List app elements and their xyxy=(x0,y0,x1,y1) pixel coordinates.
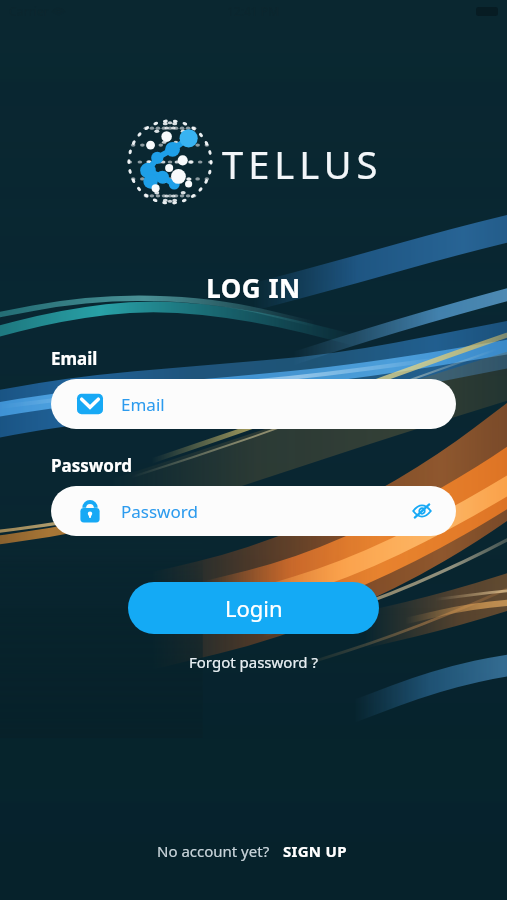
button[interactable]: Password xyxy=(51,486,456,536)
staticText: Email xyxy=(51,347,98,370)
staticText: Login xyxy=(225,593,283,623)
staticText: Email xyxy=(121,393,165,416)
button[interactable]: Show password xyxy=(408,497,436,525)
button[interactable]: Email xyxy=(51,379,456,429)
staticText: LOG IN xyxy=(0,270,507,305)
button[interactable]: Login xyxy=(128,582,379,634)
staticText: Forgot password ? xyxy=(189,652,318,672)
button[interactable]: Forgot password ? xyxy=(179,648,328,676)
staticText: TELLUS xyxy=(222,138,383,190)
staticText: Password xyxy=(121,500,198,523)
staticText: No account yet? xyxy=(157,841,270,861)
button[interactable]: SIGN UP xyxy=(279,838,351,864)
staticText: Password xyxy=(51,454,132,477)
staticText: SIGN UP xyxy=(283,841,347,861)
